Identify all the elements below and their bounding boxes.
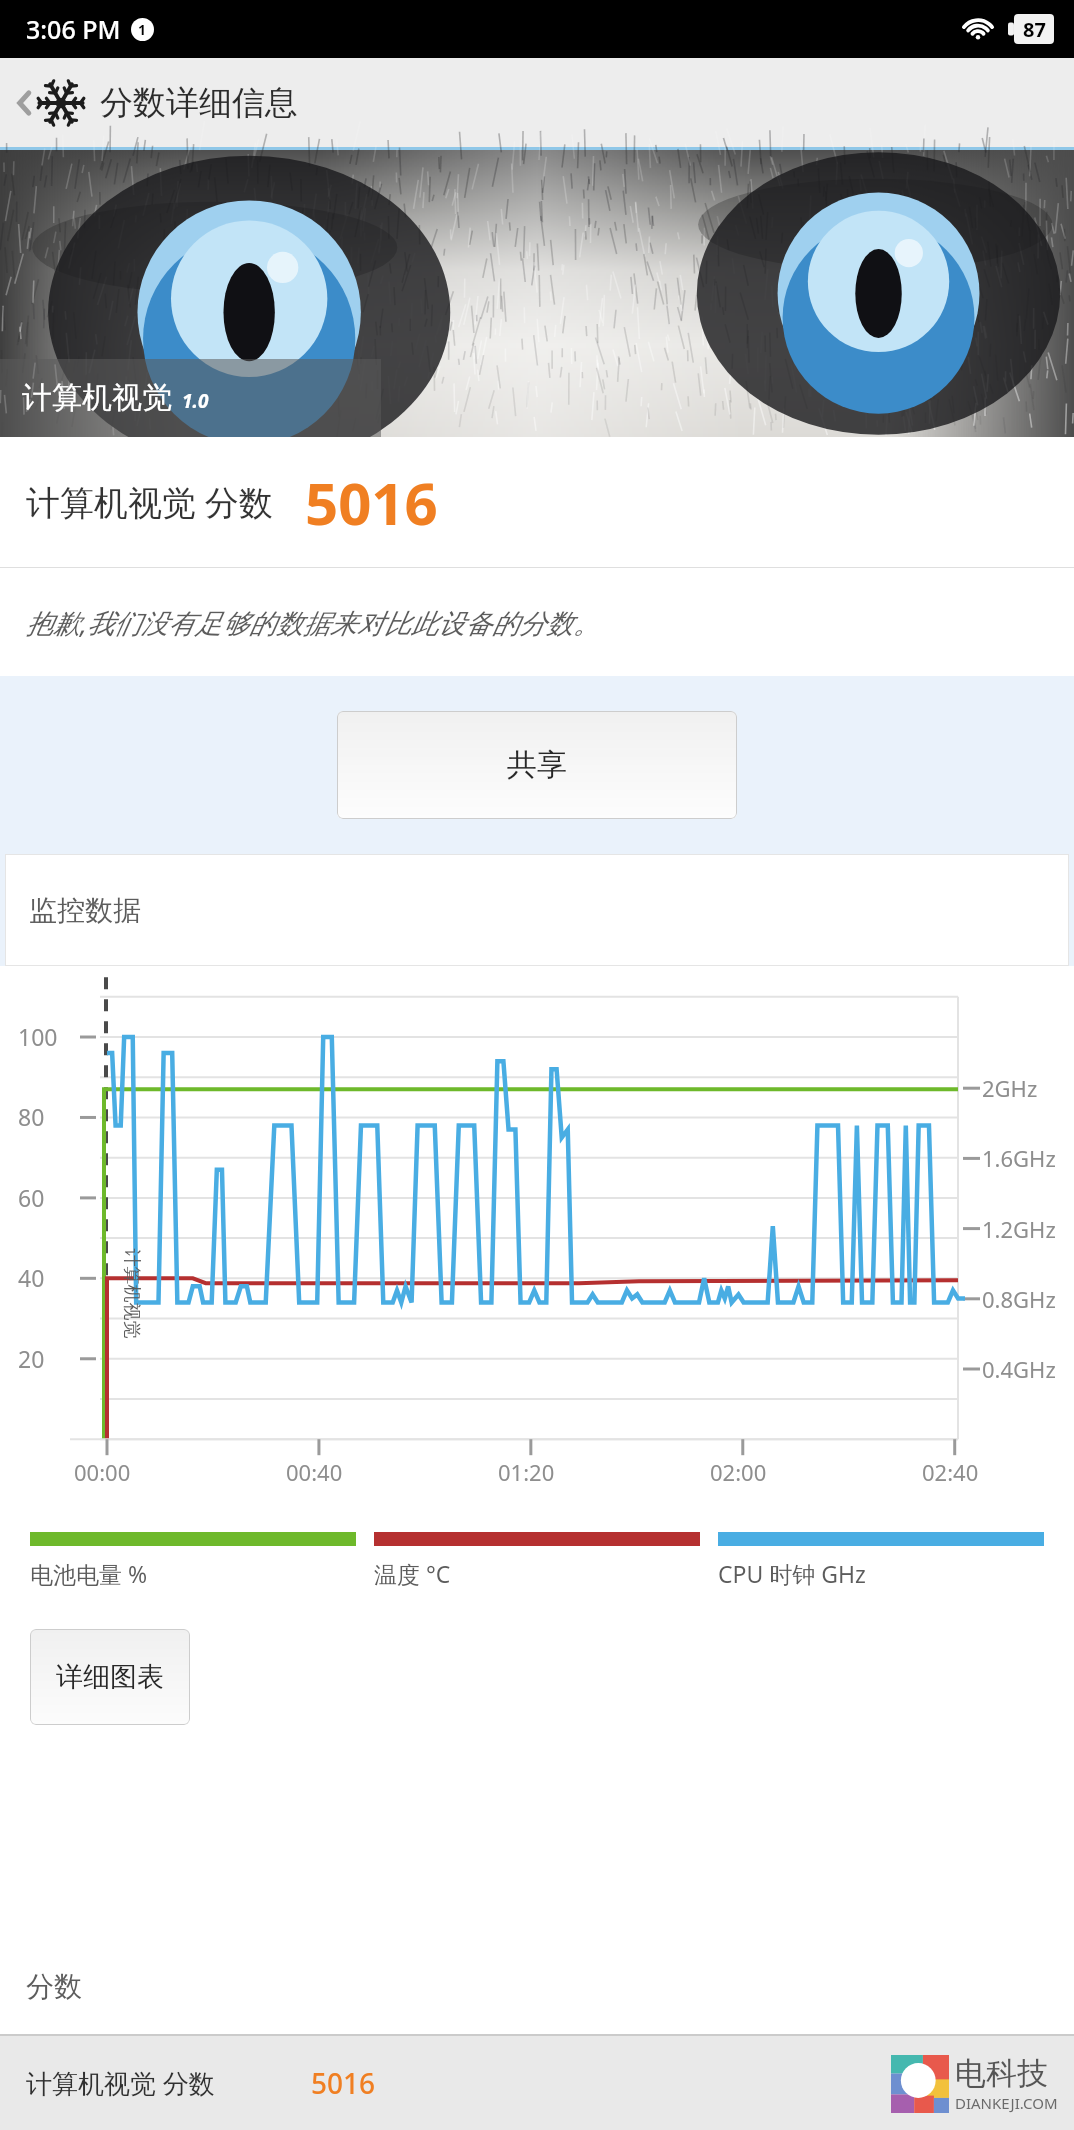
staticText: 1.0 xyxy=(182,388,209,414)
staticText: 5016 xyxy=(311,2064,376,2102)
staticText: 5016 xyxy=(305,463,438,542)
staticText: 1.6GHz xyxy=(982,1143,1056,1173)
staticText: 1 xyxy=(138,20,147,39)
staticText: 3:06 PM xyxy=(26,12,121,46)
staticText: 分数详细信息 xyxy=(100,82,298,124)
staticText: 详细图表 xyxy=(56,1660,164,1694)
staticText: 计算机视觉 分数 xyxy=(26,479,273,525)
staticText: 分数 xyxy=(26,1969,82,2004)
button[interactable]: Back xyxy=(0,58,1074,147)
staticText: 0.4GHz xyxy=(982,1354,1056,1384)
staticText: 计算机视觉 xyxy=(119,1248,142,1338)
staticText: 计算机视觉 分数 xyxy=(26,2065,215,2101)
staticText: 87 xyxy=(1023,16,1046,43)
staticText: 抱歉,我们没有足够的数据来对比此设备的分数。 xyxy=(26,604,600,641)
staticText: 计算机视觉 xyxy=(22,379,172,417)
staticText: 100 xyxy=(18,1021,58,1052)
staticText: 共享 xyxy=(507,746,567,784)
staticText: 电科技 xyxy=(955,2054,1048,2093)
staticText: 电池电量 % xyxy=(30,1558,148,1589)
staticText: 01:20 xyxy=(498,1457,555,1487)
staticText: 监控数据 xyxy=(29,893,141,928)
staticText: 2GHz xyxy=(982,1073,1038,1103)
button[interactable]: 共享 xyxy=(337,711,737,819)
staticText: 60 xyxy=(18,1182,45,1213)
staticText: 80 xyxy=(18,1101,45,1132)
button[interactable]: 详细图表 xyxy=(30,1629,190,1725)
staticText: DIANKEJI.COM xyxy=(955,2093,1058,2113)
staticText: 20 xyxy=(18,1343,45,1374)
staticText: 00:00 xyxy=(74,1457,131,1487)
staticText: 02:40 xyxy=(922,1457,979,1487)
staticText: 40 xyxy=(18,1262,45,1293)
staticText: 1.2GHz xyxy=(982,1214,1056,1244)
staticText: 0.8GHz xyxy=(982,1284,1056,1314)
staticText: 00:40 xyxy=(286,1457,343,1487)
staticText: 温度 °C xyxy=(374,1558,451,1589)
staticText: 02:00 xyxy=(710,1457,767,1487)
staticText: CPU 时钟 GHz xyxy=(718,1558,866,1589)
